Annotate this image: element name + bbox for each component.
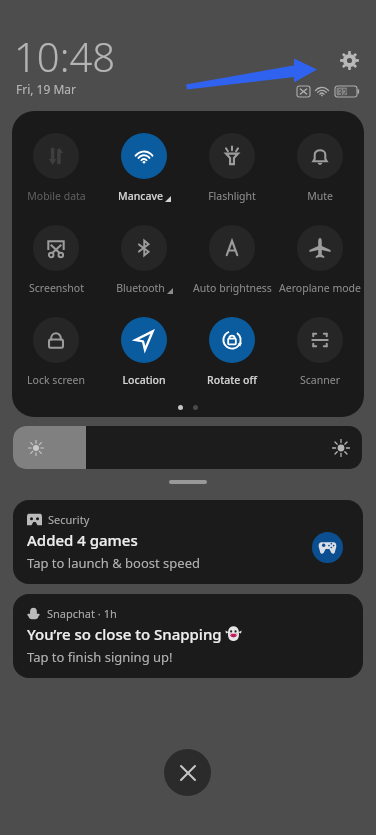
staticText: Security (48, 512, 90, 527)
button[interactable]: Settings (335, 46, 363, 74)
button[interactable]: Lock screen (12, 317, 100, 387)
staticText: Scanner (300, 373, 340, 387)
staticText: Mobile data (27, 189, 86, 203)
staticText: Aeroplane mode (279, 281, 361, 295)
staticText: Tap to finish signing up! (27, 648, 173, 666)
staticText: Rotate off (207, 373, 257, 387)
staticText: Added 4 games (27, 530, 138, 550)
button[interactable]: Snapchat · 1h (13, 594, 363, 678)
staticText: Tap to launch & boost speed (27, 554, 200, 572)
staticText: 32 (338, 87, 348, 98)
staticText: Auto brightness (193, 281, 272, 295)
button[interactable]: Auto brightness (188, 225, 276, 295)
staticText: 10:48 (14, 29, 116, 83)
button[interactable]: Mute (276, 133, 364, 203)
button[interactable]: Rotate off (188, 317, 276, 387)
button[interactable]: Close (164, 749, 211, 796)
button[interactable]: Security (13, 500, 363, 584)
button[interactable]: Bluetooth (100, 225, 188, 295)
staticText: Mute (307, 189, 333, 203)
button[interactable]: Flashlight (188, 133, 276, 203)
button[interactable]: Scanner (276, 317, 364, 387)
staticText: Location (122, 373, 166, 387)
button[interactable]: Location (100, 317, 188, 387)
staticText: Screenshot (29, 281, 84, 295)
staticText: Bluetooth (116, 281, 165, 295)
button[interactable]: Mobile data (12, 133, 100, 203)
button[interactable]: Screenshot (12, 225, 100, 295)
staticText: You’re so close to Snapping (27, 624, 222, 644)
staticText: Fri, 19 Mar (16, 81, 77, 97)
staticText: Mancave (118, 189, 163, 203)
button[interactable]: Aeroplane mode (276, 225, 364, 295)
button[interactable]: Brightness (13, 426, 362, 469)
button[interactable]: Mancave (100, 133, 188, 203)
staticText: Lock screen (27, 373, 85, 387)
staticText: Flashlight (208, 189, 256, 203)
staticText: Snapchat · 1h (47, 606, 117, 621)
